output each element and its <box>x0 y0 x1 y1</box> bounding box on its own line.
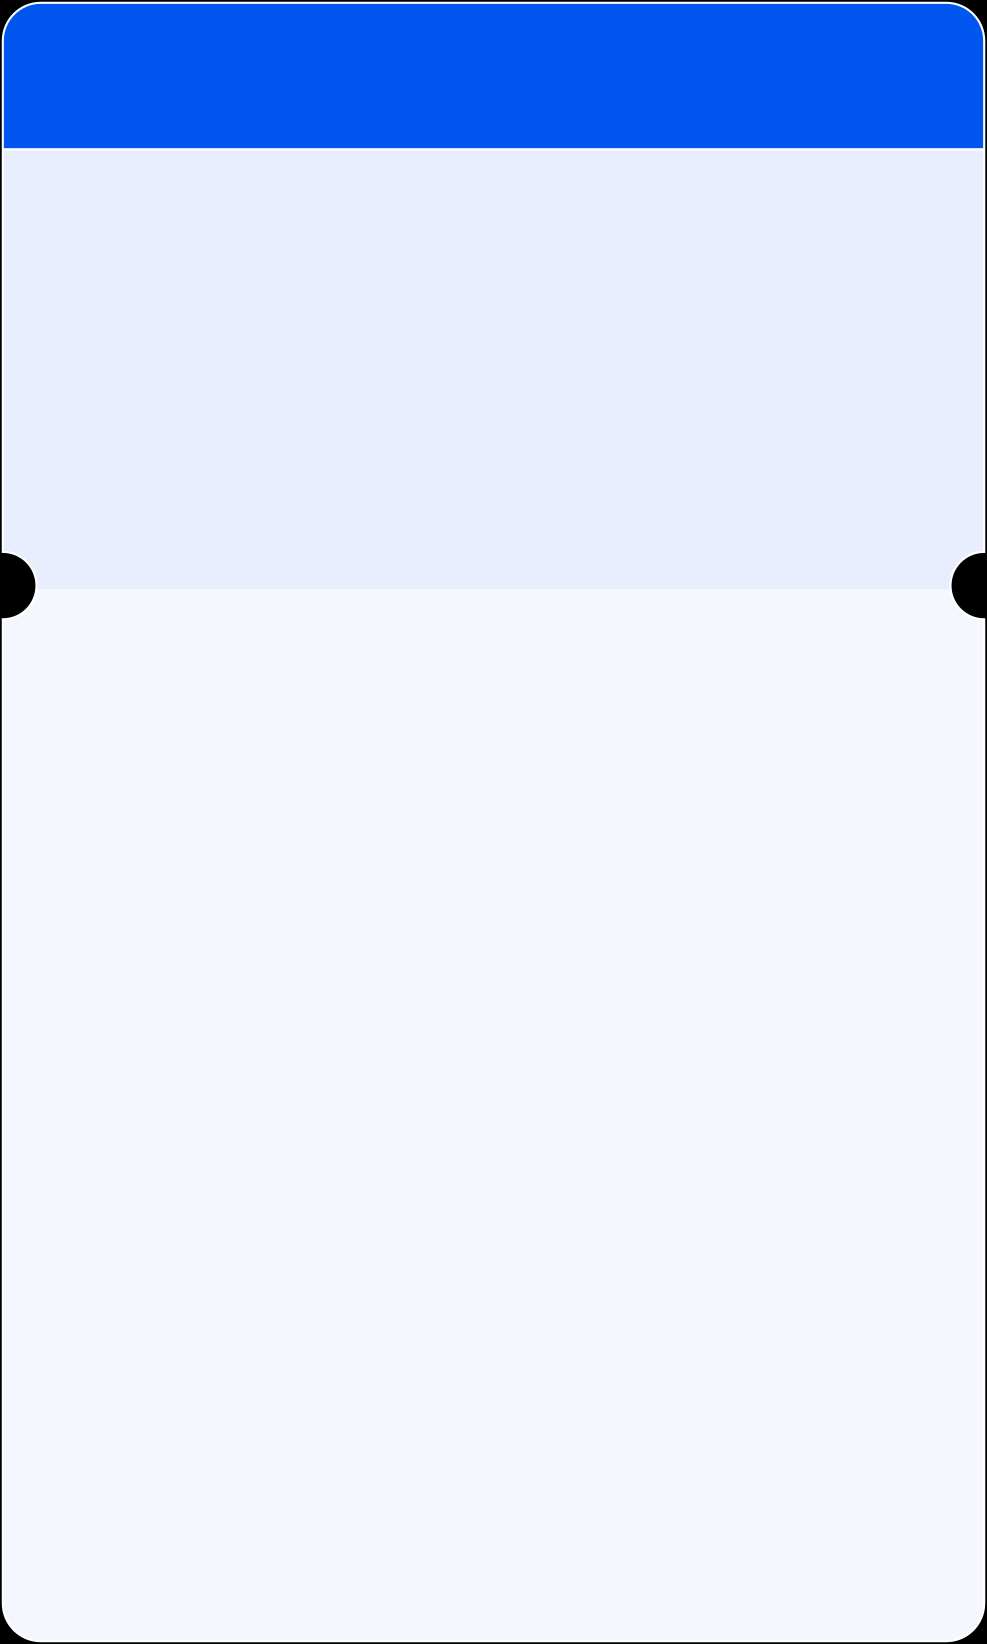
button[interactable]: Pass <box>0 0 987 1644</box>
